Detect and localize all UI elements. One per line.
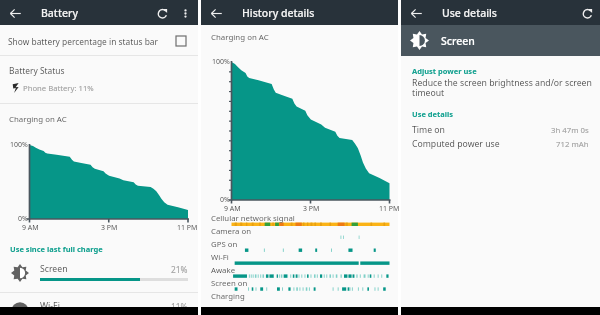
staticText: History details	[242, 6, 315, 20]
staticText: 9 AM	[22, 223, 39, 233]
staticText: Time on	[412, 124, 445, 136]
staticText: Charging	[211, 291, 245, 302]
button[interactable]: Back	[406, 3, 426, 23]
staticText: Camera on	[211, 226, 251, 237]
button[interactable]: Cellular network signal	[201, 212, 398, 225]
button[interactable]: Refresh	[152, 3, 172, 23]
staticText: Charging on AC	[9, 114, 67, 125]
staticText: Screen	[40, 263, 68, 275]
staticText: 3 PM	[303, 204, 320, 214]
staticText: Screen	[441, 34, 475, 48]
staticText: Use details	[442, 6, 497, 20]
button[interactable]: Show battery percentage in status bar	[0, 25, 198, 55]
staticText: Charging on AC	[211, 32, 269, 43]
button[interactable]: GPS on	[201, 238, 398, 251]
staticText: Battery Status	[9, 65, 65, 76]
button[interactable]: More options	[175, 3, 195, 23]
staticText: Wi-Fi	[40, 300, 60, 312]
button[interactable]: Wi-Fi	[0, 297, 198, 315]
staticText: Battery	[41, 6, 78, 20]
staticText: 100%	[212, 57, 230, 67]
staticText: Phone Battery: 11%	[23, 83, 94, 93]
staticText: 712 mAh	[556, 139, 589, 150]
staticText: Computed power use	[412, 138, 500, 150]
button[interactable]: Screen	[401, 25, 600, 56]
staticText: Reduce the screen brightness and/or scre…	[412, 77, 592, 89]
staticText: Use details	[412, 109, 454, 119]
staticText: Cellular network signal	[211, 213, 295, 224]
staticText: Screen on	[211, 278, 248, 289]
button[interactable]: Screen	[0, 258, 198, 292]
button[interactable]: Awake	[201, 264, 398, 277]
button[interactable]: Charging	[201, 290, 398, 303]
staticText: Awake	[211, 265, 236, 276]
button[interactable]: Screen on	[201, 277, 398, 290]
staticText: 3h 47m 0s	[551, 125, 589, 136]
staticText: 9 AM	[224, 204, 241, 214]
staticText: 11 PM	[379, 204, 400, 214]
staticText: GPS on	[211, 239, 238, 250]
staticText: 11 PM	[177, 223, 198, 233]
staticText: 0%	[220, 195, 230, 205]
staticText: Adjust power use	[412, 66, 477, 76]
staticText: Wi-Fi	[211, 252, 229, 263]
staticText: Use since last full charge	[10, 244, 103, 254]
button[interactable]: Refresh	[577, 3, 597, 23]
staticText: Show battery percentage in status bar	[8, 36, 159, 47]
button[interactable]: Camera on	[201, 225, 398, 238]
staticText: 100%	[10, 140, 28, 150]
button[interactable]: Wi-Fi	[201, 251, 398, 264]
button[interactable]: Back	[206, 3, 226, 23]
staticText: 3 PM	[101, 223, 118, 233]
staticText: 11%	[171, 301, 188, 312]
staticText: 21%	[171, 264, 188, 275]
staticText: 0%	[18, 214, 28, 224]
button[interactable]: Back	[5, 3, 25, 23]
staticText: timeout	[412, 87, 445, 99]
